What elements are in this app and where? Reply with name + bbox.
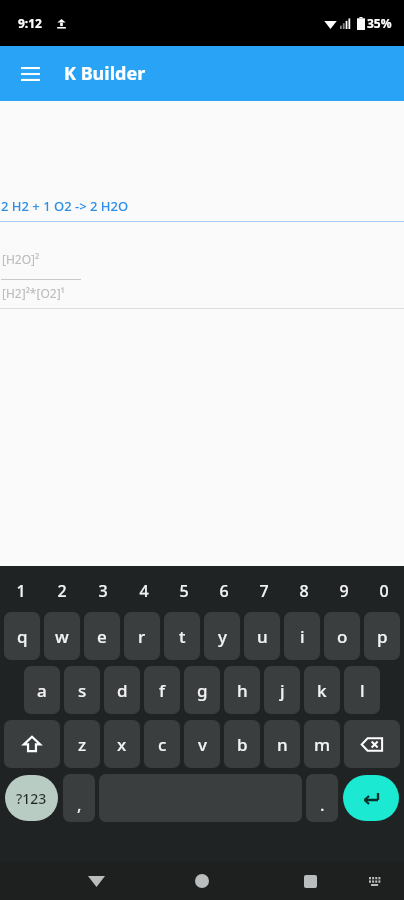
staticText: v: [198, 733, 207, 756]
staticText: b: [237, 733, 248, 756]
button[interactable]: b: [224, 720, 260, 768]
button[interactable]: c: [144, 720, 180, 768]
staticText: 5: [179, 580, 189, 602]
staticText: 9:12: [18, 15, 42, 31]
button[interactable]: s: [64, 666, 100, 714]
staticText: 2: [57, 580, 67, 602]
button[interactable]: Recent apps: [288, 862, 332, 900]
button[interactable]: Backspace: [344, 720, 400, 768]
button[interactable]: y: [204, 612, 240, 660]
button[interactable]: j: [264, 666, 300, 714]
staticText: j: [280, 679, 285, 702]
button[interactable]: 2: [41, 574, 82, 608]
staticText: K Builder: [64, 61, 146, 86]
staticText: x: [117, 733, 127, 756]
staticText: ,: [77, 793, 82, 816]
button[interactable]: i: [284, 612, 320, 660]
staticText: h: [237, 679, 248, 702]
staticText: [H2O]²: [2, 251, 40, 267]
button[interactable]: r: [124, 612, 160, 660]
staticText: u: [257, 625, 268, 648]
staticText: 7: [259, 580, 269, 602]
staticText: e: [97, 625, 107, 648]
staticText: 2 H2 + 1 O2 -> 2 H2O: [1, 197, 129, 215]
staticText: [H2]²*[O2]¹: [2, 285, 65, 301]
button[interactable]: n: [264, 720, 300, 768]
button[interactable]: 3: [82, 574, 123, 608]
staticText: a: [37, 679, 47, 702]
button[interactable]: t: [164, 612, 200, 660]
staticText: 8: [299, 580, 309, 602]
staticText: i: [300, 625, 305, 648]
staticText: 4: [139, 580, 149, 602]
button[interactable]: o: [324, 612, 360, 660]
button[interactable]: x: [104, 720, 140, 768]
button[interactable]: Open navigation menu: [8, 52, 52, 96]
staticText: 9: [339, 580, 349, 602]
button[interactable]: q: [4, 612, 40, 660]
button[interactable]: z: [64, 720, 100, 768]
button[interactable]: .: [306, 774, 338, 822]
button[interactable]: Shift: [4, 720, 60, 768]
button[interactable]: f: [144, 666, 180, 714]
button[interactable]: Home: [180, 862, 224, 900]
staticText: ?123: [16, 789, 47, 808]
staticText: f: [159, 679, 166, 702]
button[interactable]: h: [224, 666, 260, 714]
button[interactable]: 8: [284, 574, 324, 608]
button[interactable]: g: [184, 666, 220, 714]
button[interactable]: ?123: [5, 775, 58, 821]
button[interactable]: l: [344, 666, 380, 714]
staticText: r: [138, 625, 146, 648]
button[interactable]: 6: [204, 574, 244, 608]
staticText: w: [55, 625, 69, 648]
staticText: c: [158, 733, 167, 756]
staticText: k: [317, 679, 327, 702]
button[interactable]: e: [84, 612, 120, 660]
staticText: q: [17, 625, 28, 648]
staticText: l: [360, 679, 365, 702]
staticText: z: [78, 733, 87, 756]
button[interactable]: 0: [364, 574, 404, 608]
button[interactable]: 2 H2 + 1 O2 -> 2 H2O: [0, 191, 404, 221]
button[interactable]: 9: [324, 574, 364, 608]
button[interactable]: Back: [74, 862, 118, 900]
button[interactable]: k: [304, 666, 340, 714]
button[interactable]: d: [104, 666, 140, 714]
staticText: 3: [98, 580, 108, 602]
button[interactable]: w: [44, 612, 80, 660]
staticText: m: [314, 733, 331, 756]
button[interactable]: a: [24, 666, 60, 714]
staticText: 0: [379, 580, 389, 602]
staticText: s: [78, 679, 87, 702]
staticText: n: [277, 733, 288, 756]
button[interactable]: 5: [164, 574, 204, 608]
button[interactable]: m: [304, 720, 340, 768]
button[interactable]: 4: [123, 574, 164, 608]
staticText: t: [179, 625, 186, 648]
button[interactable]: p: [364, 612, 400, 660]
staticText: o: [337, 625, 348, 648]
staticText: .: [320, 793, 325, 816]
button[interactable]: Enter: [343, 775, 399, 821]
button[interactable]: v: [184, 720, 220, 768]
button[interactable]: 7: [244, 574, 284, 608]
staticText: 6: [219, 580, 229, 602]
button[interactable]: Switch keyboard: [362, 868, 388, 894]
button[interactable]: ,: [63, 774, 95, 822]
staticText: 1: [16, 580, 26, 602]
button[interactable]: 1: [0, 574, 41, 608]
staticText: g: [197, 679, 208, 702]
staticText: d: [117, 679, 128, 702]
staticText: 35%: [367, 15, 392, 31]
staticText: y: [218, 625, 227, 648]
button[interactable]: u: [244, 612, 280, 660]
staticText: p: [377, 625, 388, 648]
